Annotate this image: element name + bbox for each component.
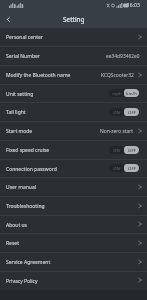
staticText: Connection password <box>6 166 57 173</box>
staticText: Unit setting <box>6 91 34 98</box>
staticText: Fixed speed cruise <box>6 147 50 154</box>
staticText: Troubleshooting <box>6 203 45 210</box>
staticText: ON <box>113 109 120 115</box>
button[interactable]: Fixed speed cruise <box>0 141 147 160</box>
button[interactable]: Start mode <box>0 122 147 141</box>
staticText: KCQScooter32 <box>101 72 134 79</box>
button[interactable]: ON <box>109 108 139 116</box>
button[interactable]: ON <box>109 164 139 172</box>
staticText: OFF <box>128 109 136 115</box>
staticText: User manual <box>6 184 36 191</box>
staticText: Setting <box>63 15 85 24</box>
staticText: mph <box>112 90 122 96</box>
button[interactable]: Personal center <box>0 28 147 47</box>
staticText: ee34d93462e0 <box>106 53 140 60</box>
staticText: Modify the Bluetooth name <box>6 72 71 79</box>
staticText: ON <box>113 165 120 171</box>
button[interactable]: User manual <box>0 178 147 197</box>
button[interactable]: Tail light <box>0 103 147 122</box>
button[interactable]: ON <box>109 146 139 154</box>
staticText: Privacy Policy <box>6 278 38 285</box>
staticText: 16:03 <box>127 2 140 9</box>
staticText: Tail light <box>6 109 26 116</box>
staticText: Serial Number <box>6 53 40 60</box>
staticText: OFF <box>128 165 136 171</box>
button[interactable]: Privacy Policy <box>0 272 147 290</box>
staticText: OFF <box>128 147 136 153</box>
button[interactable]: Modify the Bluetooth name <box>0 66 147 85</box>
button[interactable]: Reset <box>0 234 147 253</box>
button[interactable]: Troubleshooting <box>0 197 147 216</box>
button[interactable]: Connection password <box>0 160 147 178</box>
staticText: km/h <box>126 90 137 96</box>
staticText: Reset <box>6 240 19 247</box>
staticText: About us <box>6 222 27 229</box>
staticText: Service Agreement <box>6 259 51 266</box>
staticText: Personal center <box>6 34 43 41</box>
button[interactable]: Serial Number <box>0 47 147 66</box>
staticText: Start mode <box>6 128 33 135</box>
button[interactable]: Back <box>0 10 16 28</box>
button[interactable]: About us <box>0 216 147 234</box>
button[interactable]: Unit setting <box>0 85 147 103</box>
staticText: ON <box>113 147 120 153</box>
button[interactable]: Service Agreement <box>0 253 147 272</box>
button[interactable]: mph <box>109 89 139 97</box>
staticText: Non-zero start <box>100 128 134 135</box>
